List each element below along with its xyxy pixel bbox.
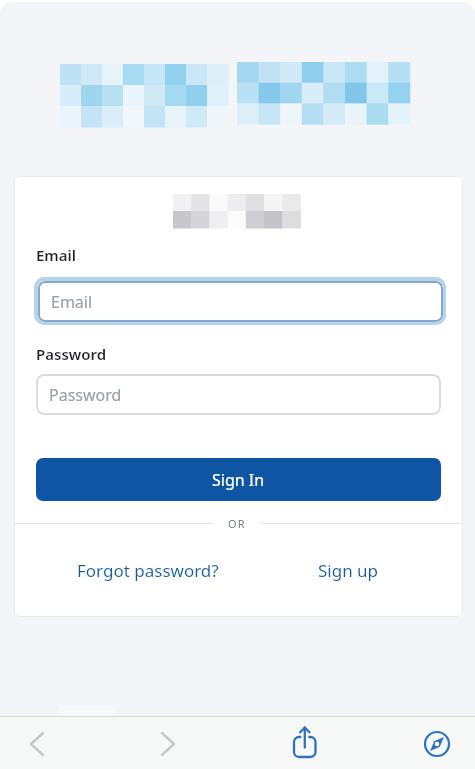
button[interactable]: Email <box>34 277 446 325</box>
staticText: Password <box>49 384 122 406</box>
staticText: Forgot password? <box>77 559 219 582</box>
staticText: Sign up <box>318 559 379 582</box>
staticText: Password <box>36 344 107 364</box>
button[interactable] <box>417 724 457 764</box>
button[interactable] <box>20 725 60 765</box>
staticText: OR <box>228 516 246 531</box>
staticText: Email <box>36 245 77 265</box>
button[interactable]: Sign In <box>36 458 441 501</box>
staticText: Sign In <box>212 469 265 491</box>
button[interactable] <box>150 725 190 765</box>
button[interactable]: Forgot password? <box>70 556 226 584</box>
staticText: Email <box>51 291 93 313</box>
button[interactable]: Password <box>36 374 441 415</box>
button[interactable]: Sign up <box>314 556 382 584</box>
button[interactable] <box>285 722 325 762</box>
